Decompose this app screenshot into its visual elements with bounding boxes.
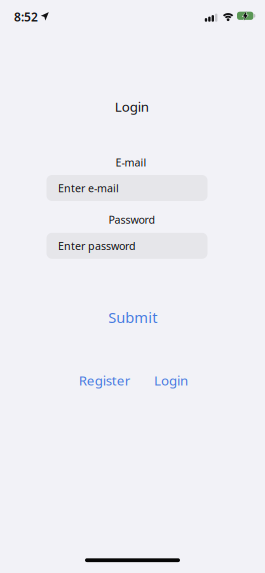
button[interactable]: Login [154,371,188,389]
staticText: Enter password [58,239,136,253]
staticText: Login [115,98,149,115]
staticText: 8:52 [14,9,38,25]
staticText: Enter e-mail [58,181,119,195]
staticText: Register [79,371,131,389]
staticText: Submit [108,308,157,327]
button[interactable]: Enter password [46,233,207,259]
button[interactable]: Submit [108,308,157,327]
staticText: E-mail [115,155,146,169]
staticText: Login [154,371,188,389]
staticText: Password [108,212,155,227]
button[interactable]: Register [79,371,131,389]
button[interactable]: Enter e-mail [46,175,207,201]
